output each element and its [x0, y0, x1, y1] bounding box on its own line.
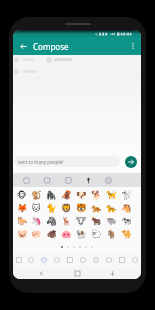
button[interactable]: 🐗 [44, 227, 59, 240]
staticText: 🐆 [106, 203, 117, 213]
staticText: 🐃 [106, 216, 117, 226]
staticText: 🐽 [61, 229, 72, 239]
staticText: 🐑 [91, 229, 102, 239]
button[interactable]: 🦌 [59, 214, 74, 227]
button[interactable]: Sticker [58, 173, 78, 187]
button[interactable]: 🐐 [104, 227, 119, 240]
button[interactable]: 🦁 [59, 201, 74, 214]
button[interactable]: Category 9 [128, 252, 141, 268]
staticText: 🐮 [76, 216, 87, 226]
button[interactable]: More options [126, 39, 140, 53]
button[interactable]: Recents [106, 268, 119, 279]
button[interactable]: Category 7 [102, 252, 115, 268]
button[interactable]: 🐅 [89, 201, 104, 214]
staticText: 🐯 [76, 203, 87, 213]
button[interactable]: 🐩 [119, 188, 134, 201]
staticText: 🦓 [46, 216, 57, 226]
button[interactable]: 🦓 [44, 214, 59, 227]
button[interactable]: 🦄 [29, 214, 44, 227]
button[interactable]: Back [35, 268, 48, 279]
button[interactable]: 🐒 [29, 188, 44, 201]
button[interactable] [13, 55, 141, 64]
button[interactable]: 🐶 [74, 188, 89, 201]
staticText: 🦊 [17, 203, 28, 213]
button[interactable]: Voice input [78, 173, 98, 187]
button[interactable]: 🦊 [15, 201, 29, 214]
button[interactable]: 🐽 [59, 227, 74, 240]
button[interactable]: Category 1 [25, 252, 37, 268]
button[interactable]: Category 0 [13, 252, 25, 268]
button[interactable]: Category 4 [63, 252, 76, 268]
staticText: 🐐 [106, 229, 117, 239]
button[interactable]: 🐖 [29, 227, 44, 240]
button[interactable]: sent to many people! [14, 156, 120, 167]
button[interactable]: 🐯 [74, 201, 89, 214]
staticText: 🦍 [46, 190, 57, 200]
button[interactable]: 🐱 [29, 201, 44, 214]
staticText: 🐄 [121, 216, 132, 226]
staticText: 🐈 [46, 203, 57, 213]
button[interactable]: 🐂 [89, 214, 104, 227]
button[interactable]: 🦧 [59, 188, 74, 201]
button[interactable]: 🐵 [15, 188, 29, 201]
staticText: 🦮 [106, 190, 117, 200]
staticText: 🐒 [31, 190, 42, 200]
button[interactable]: Emoji [16, 173, 37, 187]
button[interactable]: 🐎 [15, 214, 29, 227]
button[interactable]: 🐆 [104, 201, 119, 214]
button[interactable] [13, 67, 141, 75]
staticText: 🐩 [121, 190, 132, 200]
staticText: 🐏 [76, 229, 87, 239]
button[interactable]: 🐈 [44, 201, 59, 214]
button[interactable]: GIF [37, 173, 58, 187]
staticText: 🐴 [121, 203, 132, 213]
staticText: 🐎 [17, 216, 28, 226]
staticText: Compose [33, 41, 69, 52]
button[interactable]: Category 2 [37, 252, 50, 268]
button[interactable]: Category 6 [89, 252, 102, 268]
button[interactable]: 🦮 [104, 188, 119, 201]
staticText: 🐖 [31, 229, 42, 239]
button[interactable]: 🐷 [15, 227, 29, 240]
staticText: sent to many people! [18, 159, 64, 165]
staticText: 🐷 [17, 229, 28, 239]
button[interactable]: 🐮 [74, 214, 89, 227]
staticText: 🐪 [121, 229, 132, 239]
staticText: 🐵 [17, 190, 27, 200]
button[interactable]: Settings [98, 173, 118, 187]
button[interactable]: Category 8 [115, 252, 128, 268]
button[interactable]: 🐃 [104, 214, 119, 227]
button[interactable]: 🐪 [119, 227, 134, 240]
button[interactable]: Back [16, 39, 30, 53]
staticText: 🐱 [32, 203, 41, 213]
staticText: 🐕 [91, 190, 102, 200]
staticText: 🦧 [61, 190, 72, 200]
staticText: 🦄 [31, 216, 42, 226]
staticText: 🐅 [91, 203, 102, 213]
button[interactable]: 🐏 [74, 227, 89, 240]
staticText: 🐂 [91, 216, 102, 226]
button[interactable]: 🐕 [89, 188, 104, 201]
staticText: 🐗 [46, 229, 57, 239]
button[interactable]: Category 5 [76, 252, 89, 268]
button[interactable]: 🐑 [89, 227, 104, 240]
button[interactable]: 🐴 [119, 201, 134, 214]
button[interactable]: 🦍 [44, 188, 59, 201]
button[interactable]: Send [125, 156, 137, 168]
staticText: 🦁 [61, 203, 72, 213]
button[interactable]: Home [71, 268, 84, 279]
button[interactable]: 🐄 [119, 214, 134, 227]
staticText: 🐶 [76, 190, 87, 200]
staticText: 🦌 [61, 216, 72, 226]
button[interactable]: Category 3 [50, 252, 63, 268]
